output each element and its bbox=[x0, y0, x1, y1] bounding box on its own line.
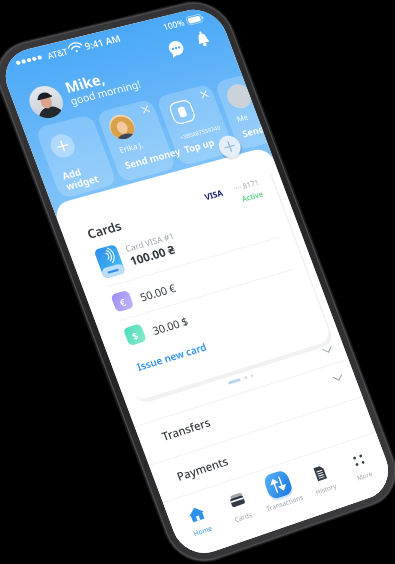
button[interactable] bbox=[99, 188, 292, 279]
button[interactable] bbox=[249, 458, 312, 526]
button[interactable] bbox=[149, 333, 227, 375]
button[interactable] bbox=[34, 111, 118, 199]
button[interactable] bbox=[124, 263, 313, 347]
button[interactable] bbox=[170, 490, 230, 554]
button[interactable] bbox=[293, 446, 350, 508]
button[interactable]: Notifications bbox=[53, 58, 88, 90]
button[interactable] bbox=[94, 92, 176, 179]
button[interactable] bbox=[152, 74, 233, 160]
button[interactable] bbox=[113, 230, 302, 313]
button[interactable] bbox=[211, 477, 270, 540]
button[interactable] bbox=[332, 434, 389, 495]
button[interactable] bbox=[152, 352, 357, 448]
button[interactable]: Messages bbox=[24, 65, 59, 97]
button[interactable] bbox=[165, 391, 369, 488]
